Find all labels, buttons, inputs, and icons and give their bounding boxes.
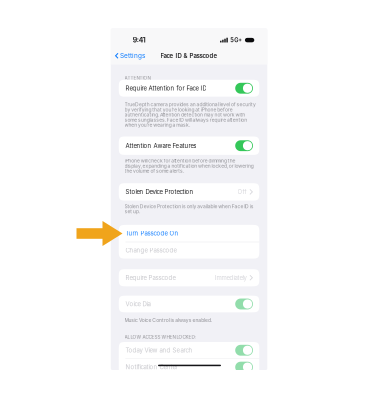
button[interactable]: Turn Passcode On [119,225,259,242]
staticText: 5G+ [230,37,242,43]
staticText: Settings [120,52,145,60]
button[interactable]: Require Passcode [119,269,259,286]
staticText: Face ID & Passcode [161,52,218,60]
staticText: Notification Center [125,363,177,371]
staticText: Attention Aware Features [125,142,196,149]
staticText: ATTENTION [124,75,150,81]
button[interactable]: Require Attention for Face ID [119,80,259,97]
staticText: Music Voice Control is always enabled. [124,317,212,323]
button[interactable]: Notification Center [119,359,259,375]
staticText: Require Passcode [125,274,175,281]
staticText: TrueDepth camera provides an additional … [124,101,256,128]
staticText: Immediately [215,274,247,281]
staticText: ALLOW ACCESS WHEN LOCKED: [124,334,195,340]
button[interactable]: Change Passcode [119,242,259,259]
button[interactable]: Attention Aware Features [119,136,259,155]
staticText: 9:41 [133,36,146,44]
staticText: Change Passcode [125,247,176,254]
staticText: Voice Dial [125,300,151,308]
staticText: Off [238,188,247,196]
staticText: Today View and Search [125,347,192,354]
staticText: Require Attention for Face ID [125,85,206,92]
staticText: Stolen Device Protection is only availab… [124,203,254,214]
button[interactable]: Settings [111,49,147,62]
staticText: iPhone will check for attention before d… [124,158,254,174]
staticText: Turn Passcode On [125,230,178,237]
button[interactable]: Stolen Device Protection [119,183,259,201]
staticText: Stolen Device Protection [125,188,193,196]
button[interactable]: Today View and Search [119,342,259,358]
button[interactable]: Voice Dial [119,296,259,312]
